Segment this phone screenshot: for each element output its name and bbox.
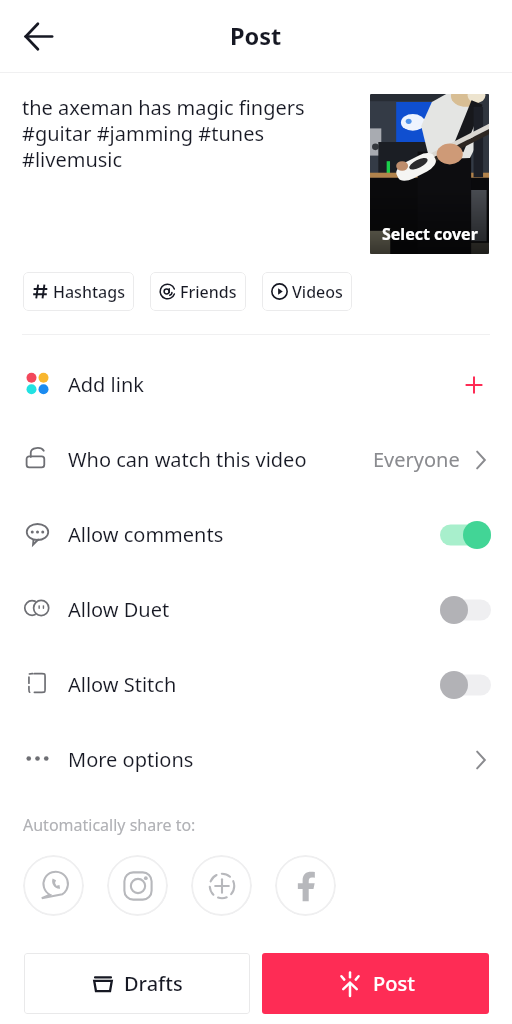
staticText: the axeman has magic fingers #guitar #ja…: [22, 94, 307, 173]
staticText: Post: [373, 970, 415, 997]
button[interactable]: Disabled: [440, 671, 491, 699]
button[interactable]: Select cover: [370, 94, 489, 254]
staticText: More options: [68, 746, 469, 773]
button[interactable]: Instagram: [107, 855, 168, 916]
button[interactable]: Friends: [150, 272, 246, 311]
staticText: Select cover: [382, 223, 478, 245]
button[interactable]: Facebook: [275, 855, 336, 916]
button[interactable]: Disabled: [440, 596, 491, 624]
staticText: Drafts: [124, 970, 183, 997]
staticText: Add link: [68, 371, 457, 398]
button[interactable]: Who can watch this video: [0, 422, 512, 497]
button[interactable]: Add link: [0, 347, 512, 422]
staticText: Videos: [292, 281, 343, 303]
staticText: Who can watch this video: [68, 446, 373, 473]
button[interactable]: Add link: [457, 368, 491, 402]
button[interactable]: Drafts: [24, 953, 250, 1014]
button[interactable]: More options: [0, 722, 512, 797]
staticText: Allow Stitch: [68, 671, 440, 698]
button[interactable]: Allow comments: [0, 497, 512, 572]
staticText: Friends: [180, 281, 237, 303]
button[interactable]: WhatsApp: [23, 855, 84, 916]
button[interactable]: Allow Duet: [0, 572, 512, 647]
button[interactable]: More apps: [191, 855, 252, 916]
button[interactable]: Hashtags: [23, 272, 134, 311]
button[interactable]: Videos: [262, 272, 352, 311]
staticText: Allow comments: [68, 521, 440, 548]
button[interactable]: Allow Stitch: [0, 647, 512, 722]
staticText: Post: [230, 20, 282, 52]
button[interactable]: Back: [13, 11, 63, 61]
staticText: Automatically share to:: [23, 814, 196, 836]
button[interactable]: Post: [262, 953, 489, 1014]
staticText: Hashtags: [53, 281, 125, 303]
staticText: Allow Duet: [68, 596, 440, 623]
button[interactable]: Enabled: [440, 521, 491, 549]
staticText: Everyone: [373, 446, 460, 473]
